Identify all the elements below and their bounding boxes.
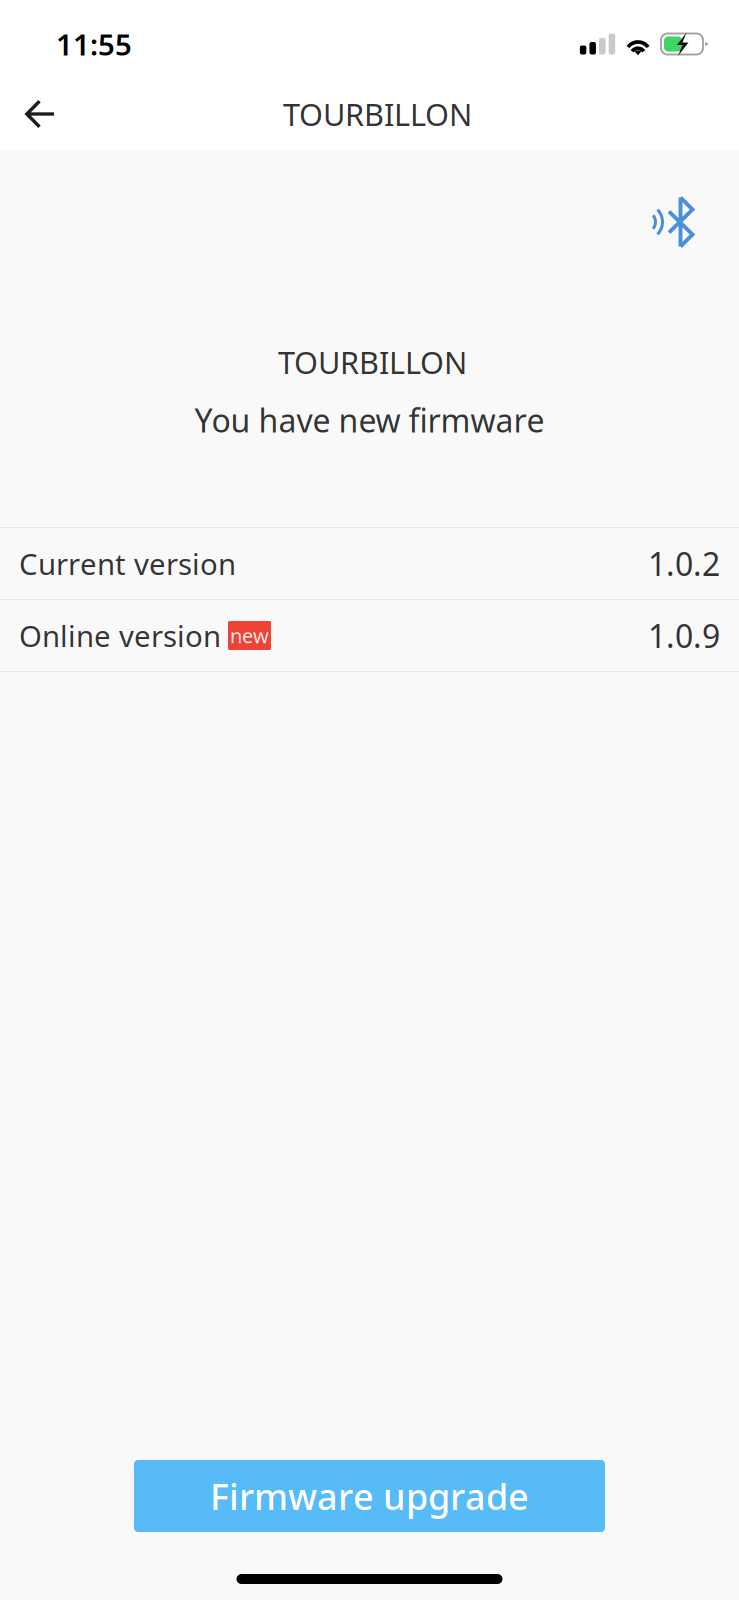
staticText: 1.0.2	[648, 542, 720, 585]
staticText: You have new firmware	[194, 399, 544, 441]
staticText: 11:55	[56, 24, 132, 63]
staticText: TOURBILLON	[283, 94, 472, 134]
button[interactable]: Back	[0, 88, 71, 140]
staticText: Current version	[19, 544, 236, 583]
staticText: new	[230, 622, 269, 649]
staticText: 1.0.9	[648, 614, 720, 657]
staticText: TOURBILLON	[278, 342, 467, 382]
staticText: Online version	[19, 616, 221, 655]
button[interactable]: Firmware upgrade	[134, 1460, 605, 1532]
staticText: Firmware upgrade	[210, 1472, 529, 1520]
